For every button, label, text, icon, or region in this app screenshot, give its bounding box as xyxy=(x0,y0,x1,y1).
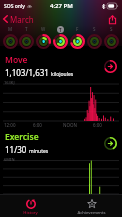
staticText: T xyxy=(25,26,28,32)
staticText: 6MIN xyxy=(4,157,15,162)
staticText: NOON xyxy=(63,122,78,128)
button[interactable] xyxy=(52,34,69,49)
staticText: W xyxy=(41,26,46,32)
button[interactable] xyxy=(35,34,52,49)
staticText: 11/30 xyxy=(5,144,27,155)
staticText: kilojoules xyxy=(51,71,74,78)
staticText: SOS only xyxy=(4,3,25,10)
button[interactable] xyxy=(103,34,120,49)
staticText: 163KJ xyxy=(4,80,15,85)
button[interactable]: Move details xyxy=(103,59,117,73)
button[interactable]: March xyxy=(0,12,38,26)
button[interactable] xyxy=(18,34,35,49)
staticText: Move xyxy=(5,54,28,66)
staticText: M xyxy=(8,26,13,32)
staticText: 6:00 xyxy=(33,122,42,128)
button[interactable]: Exercise details xyxy=(103,136,117,150)
staticText: S xyxy=(110,26,113,32)
staticText: History xyxy=(23,210,38,216)
staticText: March xyxy=(10,14,34,24)
staticText: T xyxy=(59,27,62,33)
button[interactable]: Achievements xyxy=(61,195,122,217)
staticText: 6:00 xyxy=(93,122,102,128)
staticText: 12:00 xyxy=(4,122,16,128)
button[interactable] xyxy=(2,34,18,49)
staticText: F xyxy=(76,26,79,32)
staticText: 4:27 PM xyxy=(50,2,73,10)
staticText: Achievements xyxy=(77,210,106,216)
button[interactable]: Exercise xyxy=(0,129,122,156)
staticText: Exercise xyxy=(5,131,39,143)
staticText: minutes xyxy=(29,148,49,155)
button[interactable] xyxy=(86,34,103,49)
button[interactable]: Share xyxy=(106,13,118,25)
button[interactable] xyxy=(69,34,86,49)
staticText: 1,103/1,631 xyxy=(5,67,49,78)
staticText: S xyxy=(93,26,96,32)
button[interactable]: Move xyxy=(0,52,122,79)
button[interactable]: History xyxy=(0,195,61,217)
